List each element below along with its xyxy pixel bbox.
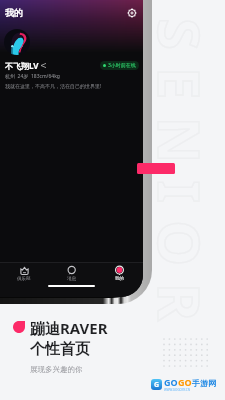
staticText: 我的 [115, 276, 124, 282]
staticText: G [154, 380, 160, 390]
staticText: 我的 [5, 7, 23, 18]
staticText: GO [178, 376, 192, 388]
staticText: 消息 [67, 276, 76, 282]
staticText: 手游网 [192, 378, 216, 388]
staticText: 我就在这里，不高不凡，活在自己的世界里! [5, 83, 102, 90]
staticText: WWW.GOGOSY.CN [164, 388, 190, 392]
staticText: 个性首页 [30, 340, 90, 359]
button[interactable]: 3小时前在线 [100, 61, 139, 70]
button[interactable]: 我的 [95, 265, 143, 282]
staticText: 展现多兴趣的你 [30, 365, 83, 374]
staticText: 不飞翔LV [5, 60, 39, 71]
staticText: 杭州 24岁 183cm/64kg [5, 73, 60, 80]
button[interactable]: 俱乐部 [0, 265, 47, 282]
staticText: 蹦迪RAVER [30, 318, 108, 338]
staticText: 俱乐部 [17, 276, 31, 282]
button[interactable]: 消息 [47, 265, 95, 282]
staticText: GO [164, 376, 178, 388]
button[interactable]: Settings [125, 6, 138, 19]
staticText: 3小时前在线 [108, 62, 136, 69]
button[interactable]: Avatar [4, 29, 30, 55]
